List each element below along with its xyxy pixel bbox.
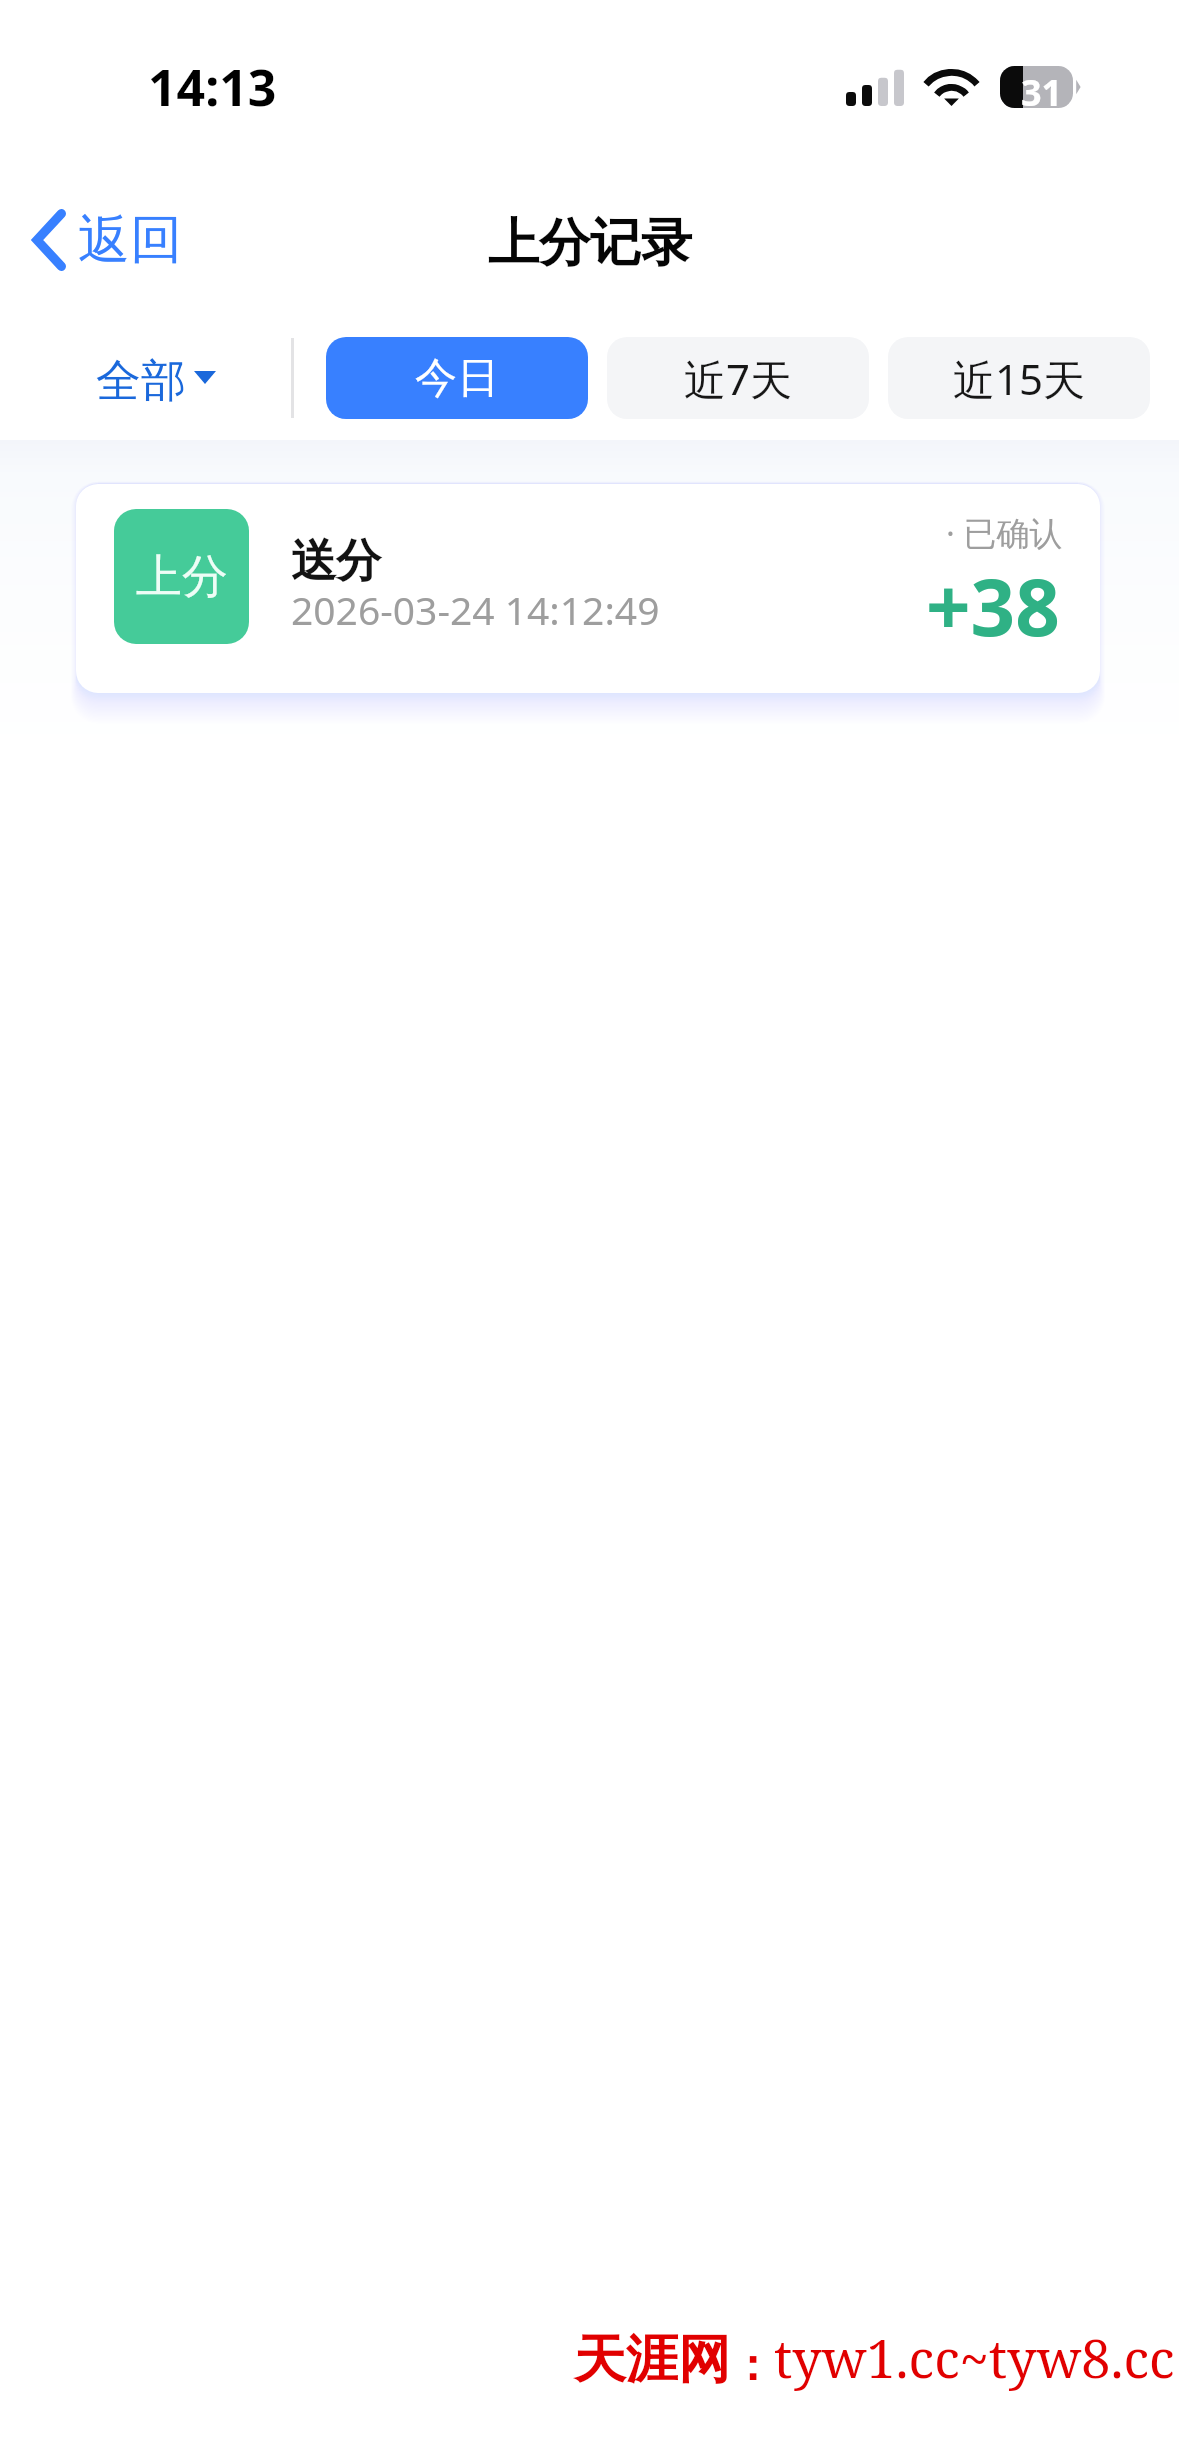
staticText: 近15天	[953, 350, 1086, 407]
staticText: +38	[926, 553, 1060, 659]
staticText: · 已确认	[946, 510, 1063, 555]
staticText: 2026-03-24 14:12:49	[291, 583, 660, 636]
staticText: 近7天	[684, 350, 793, 407]
staticText: 31	[1021, 68, 1063, 110]
staticText: 上分	[136, 548, 228, 606]
staticText: 全部	[96, 353, 186, 410]
staticText: 上分记录	[488, 211, 692, 275]
button[interactable]: 上分	[76, 484, 1100, 693]
other: Battery 31 percent	[1000, 66, 1080, 108]
other: Cellular signal	[846, 69, 904, 106]
staticText: ：	[730, 2338, 774, 2393]
staticText: 返回	[78, 207, 182, 273]
button[interactable]: 今日	[326, 337, 588, 419]
other: Wi-Fi	[926, 69, 977, 106]
button[interactable]: 近7天	[607, 337, 869, 419]
staticText: 送分	[291, 533, 381, 590]
staticText: 天涯网	[574, 2327, 730, 2393]
button[interactable]: 全部	[88, 339, 224, 424]
button[interactable]: Back	[12, 193, 204, 287]
staticText: 今日	[415, 352, 499, 405]
other: Back	[32, 209, 66, 271]
button[interactable]: 近15天	[888, 337, 1150, 419]
staticText: tyw1.cc~tyw8.cc	[774, 2322, 1175, 2393]
staticText: 14:13	[148, 53, 277, 121]
